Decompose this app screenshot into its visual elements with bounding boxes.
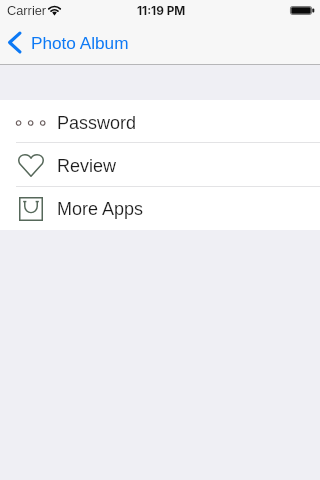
staticText: 11:19 PM [137, 4, 186, 18]
staticText: Review [57, 156, 117, 176]
button[interactable]: More Apps [0, 186, 320, 230]
button[interactable]: Password [0, 100, 320, 142]
staticText: Photo Album [31, 33, 129, 52]
button[interactable]: Review [0, 143, 320, 186]
staticText: Password [57, 113, 137, 133]
staticText: More Apps [57, 199, 144, 219]
other: Back [8, 32, 21, 53]
staticText: Carrier [7, 3, 47, 17]
button[interactable]: Back [0, 25, 141, 60]
